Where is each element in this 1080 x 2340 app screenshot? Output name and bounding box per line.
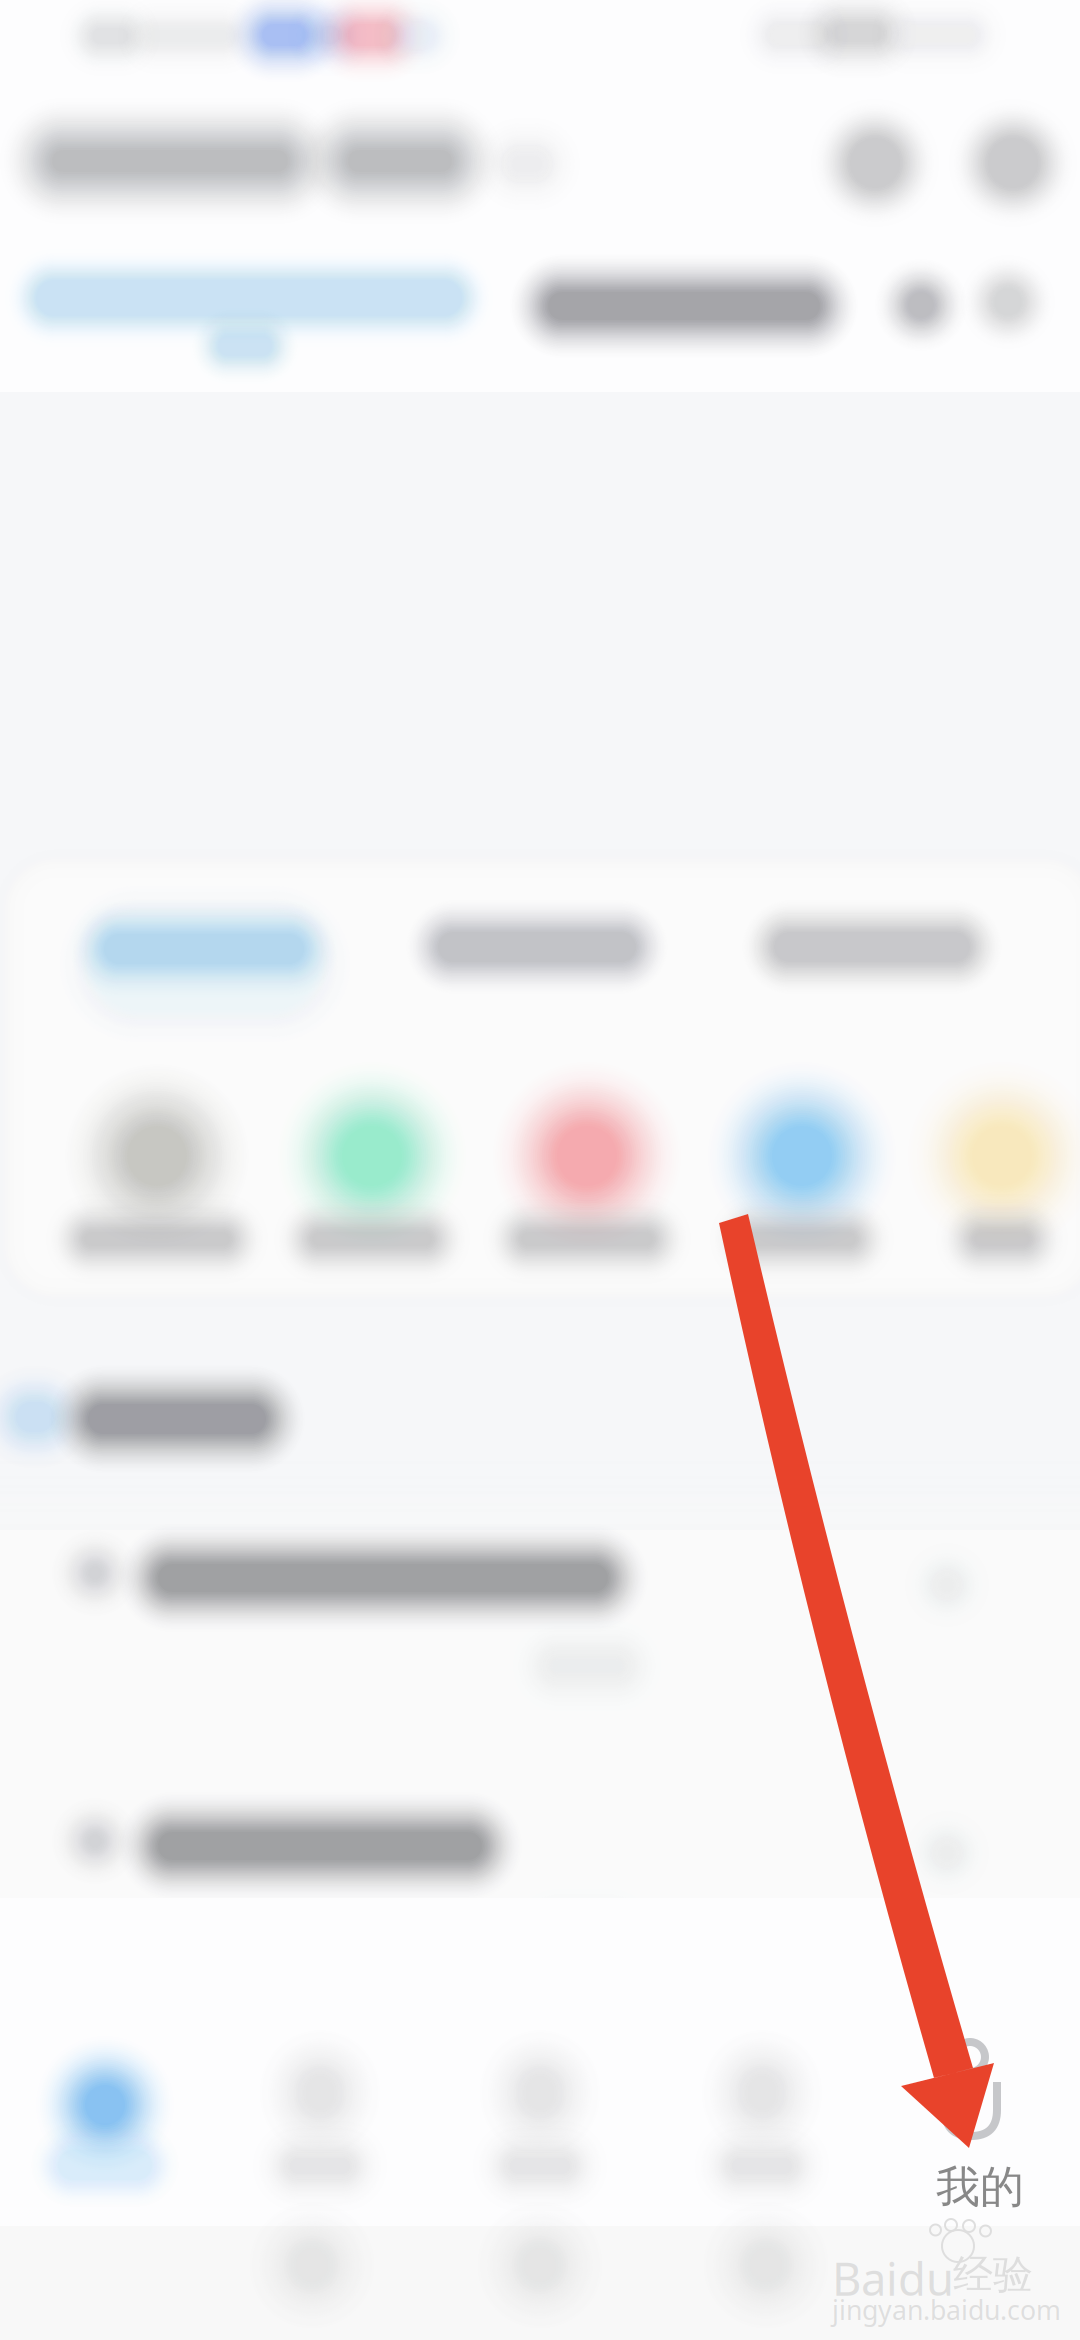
button[interactable]: Quick action [0,0,1080,2340]
button[interactable]: List item [0,0,1080,2340]
staticText: 经验 [953,2250,1033,2299]
button[interactable]: Quick action [0,0,1080,2340]
button[interactable]: List item [0,0,1080,2340]
button[interactable]: Title [0,0,1080,2340]
staticText: jingyan.baidu.com [832,2292,1061,2327]
button[interactable]: Quick action [0,0,1080,2340]
button[interactable]: Tab [0,0,1080,2340]
button[interactable]: Third segment [0,0,1080,2340]
button[interactable]: 我的 [0,0,1080,2340]
button[interactable]: Second filter [0,0,1080,2340]
button[interactable]: Sort [0,0,1080,2340]
button[interactable]: Quick action [0,0,1080,2340]
button[interactable]: Search [0,0,1080,2340]
button[interactable]: Subtitle [0,0,1080,2340]
button[interactable]: Selected filter [0,0,1080,2340]
button[interactable]: More options [0,0,1080,2340]
button[interactable]: Selected segment [0,0,1080,2340]
button[interactable]: Quick action [0,0,1080,2340]
button[interactable]: Home tab [0,0,1080,2340]
button[interactable]: Tab [0,0,1080,2340]
button[interactable]: Grid layout [0,0,1080,2340]
staticText: 我的 [936,2160,1024,2214]
button[interactable]: Tab [0,0,1080,2340]
button[interactable]: Second segment [0,0,1080,2340]
staticText: Baidu [832,2248,954,2308]
